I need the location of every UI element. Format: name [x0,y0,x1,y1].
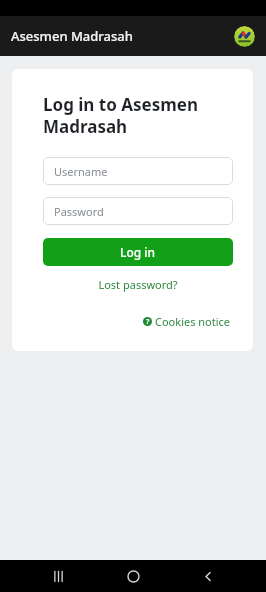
button[interactable]: Password [43,197,233,225]
button[interactable]: Username [43,157,233,185]
button[interactable]: ? [141,312,233,331]
staticText: ? [146,317,150,326]
button[interactable]: Asesmen Madrasah logo [234,26,255,47]
staticText: Log in to Asesmen Madrasah [43,93,233,138]
staticText: Asesmen Madrasah [11,27,133,45]
button[interactable]: Lost password? [95,275,181,294]
staticText: Username [54,164,108,179]
button[interactable]: Recent apps [41,560,75,592]
staticText: Log in [120,244,156,260]
staticText: Lost password? [98,277,178,292]
button[interactable]: Log in [43,238,233,266]
button[interactable]: Home [116,560,150,592]
staticText: Cookies notice [155,314,231,329]
button[interactable]: Back [191,560,225,592]
staticText: Password [54,204,104,219]
